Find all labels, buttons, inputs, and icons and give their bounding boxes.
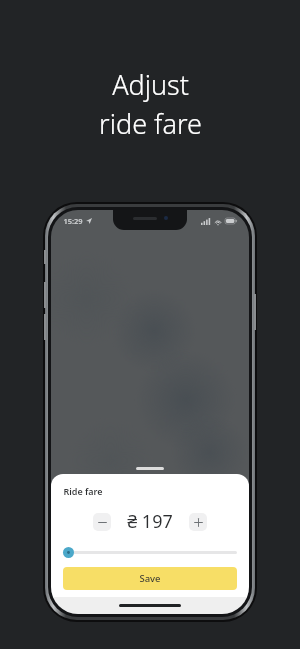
staticText: 15:29 [63, 216, 83, 226]
staticText: Ride fare [63, 485, 103, 497]
staticText: ₴ 197 [127, 509, 173, 534]
button[interactable]: Save [63, 567, 237, 590]
staticText: Save [139, 572, 161, 585]
button[interactable]: Decrease fare [93, 513, 111, 531]
button[interactable]: Increase fare [189, 513, 207, 531]
button[interactable] [63, 545, 237, 559]
staticText: Adjust [112, 66, 189, 103]
staticText: ride fare [99, 105, 202, 142]
